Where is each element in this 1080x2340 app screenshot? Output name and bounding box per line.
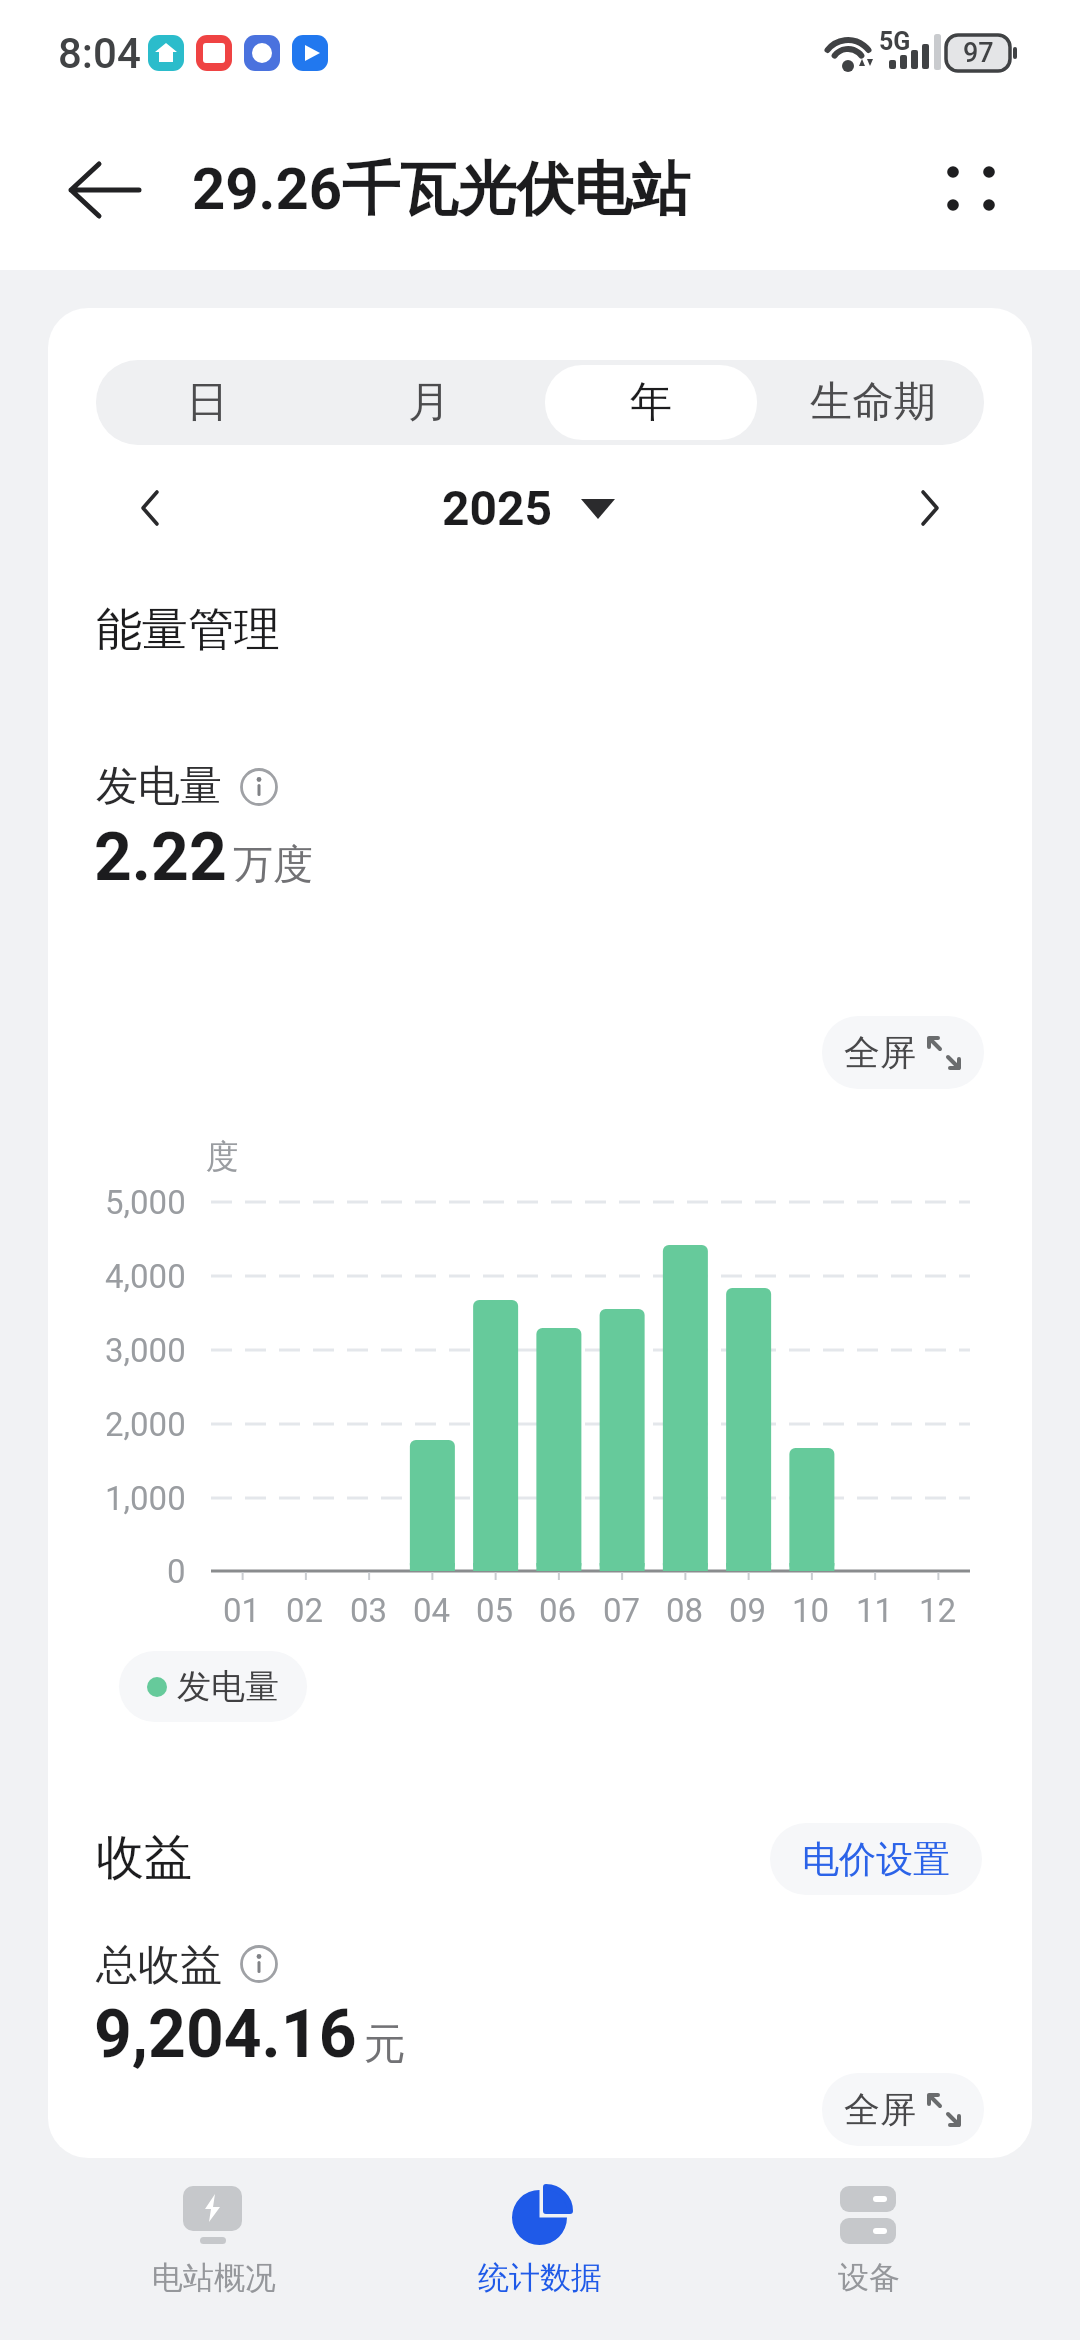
- staticText: 05: [476, 1591, 514, 1630]
- button[interactable]: 年: [540, 360, 762, 445]
- button[interactable]: 全屏: [822, 2073, 984, 2146]
- staticText: 能量管理: [96, 601, 280, 659]
- staticText: 12: [919, 1591, 957, 1630]
- button[interactable]: 2025: [408, 470, 648, 546]
- button[interactable]: [762, 2166, 982, 2316]
- staticText: 06: [539, 1591, 577, 1630]
- staticText: 5,000: [105, 1183, 186, 1222]
- staticText: 1,000: [105, 1479, 186, 1518]
- button[interactable]: 全屏: [822, 1016, 984, 1089]
- staticText: 8:04: [58, 29, 141, 78]
- staticText: 07: [603, 1591, 641, 1630]
- staticText: 03: [350, 1591, 388, 1630]
- staticText: 全屏: [844, 1030, 916, 1075]
- staticText: 29.26千瓦光伏电站: [192, 153, 690, 226]
- staticText: 月: [408, 376, 450, 429]
- staticText: 日: [186, 376, 228, 429]
- staticText: 11: [856, 1591, 894, 1630]
- button[interactable]: 月: [318, 360, 540, 445]
- button[interactable]: [104, 2166, 324, 2316]
- staticText: 收益: [96, 1828, 192, 1888]
- button[interactable]: [48, 150, 158, 230]
- staticText: 0: [167, 1552, 186, 1591]
- staticText: 01: [223, 1591, 261, 1630]
- staticText: 总收益: [96, 1939, 222, 1992]
- button[interactable]: 生命期: [762, 360, 984, 445]
- staticText: 3,000: [105, 1331, 186, 1370]
- staticText: 5G: [879, 27, 911, 56]
- staticText: 9,204.16: [94, 1996, 357, 2073]
- staticText: 电站概况: [152, 2258, 276, 2297]
- staticText: 全屏: [844, 2087, 916, 2132]
- staticText: 2,000: [105, 1405, 186, 1444]
- staticText: 设备: [838, 2258, 900, 2297]
- staticText: 统计数据: [478, 2258, 602, 2297]
- button[interactable]: [925, 145, 1020, 235]
- staticText: 4,000: [105, 1257, 186, 1296]
- staticText: 元: [364, 2018, 406, 2071]
- staticText: 04: [413, 1591, 451, 1630]
- staticText: 08: [666, 1591, 704, 1630]
- staticText: 97: [963, 37, 994, 69]
- staticText: 2.22: [94, 819, 227, 896]
- staticText: 09: [729, 1591, 767, 1630]
- button[interactable]: 电价设置: [770, 1823, 982, 1895]
- staticText: 02: [286, 1591, 324, 1630]
- button[interactable]: [430, 2166, 650, 2316]
- button[interactable]: 日: [96, 360, 318, 445]
- button[interactable]: [890, 470, 970, 546]
- staticText: 年: [630, 376, 672, 429]
- staticText: 发电量: [177, 1665, 279, 1708]
- staticText: 度: [206, 1136, 239, 1178]
- staticText: 生命期: [810, 376, 936, 429]
- staticText: 10: [792, 1591, 830, 1630]
- staticText: 2025: [442, 480, 553, 536]
- staticText: 发电量: [96, 760, 222, 813]
- staticText: 万度: [233, 839, 313, 889]
- staticText: 电价设置: [802, 1836, 950, 1883]
- button[interactable]: [110, 470, 190, 546]
